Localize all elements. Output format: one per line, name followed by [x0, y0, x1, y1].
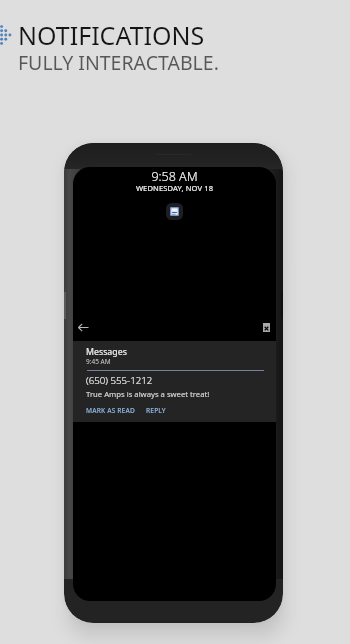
button[interactable]: Back	[74, 318, 92, 336]
button[interactable]: MARK AS READ	[86, 406, 135, 415]
button[interactable]: SIM status	[260, 321, 272, 333]
button[interactable]: Messages	[166, 203, 183, 220]
button[interactable]: REPLY	[146, 406, 166, 415]
staticText: (650) 555-1212	[86, 374, 153, 387]
staticText: WEDNESDAY, NOV 18	[73, 183, 276, 193]
staticText: 9:58 AM	[73, 168, 276, 185]
staticText: True Amps is always a sweet treat!	[86, 389, 210, 399]
staticText: REPLY	[146, 406, 166, 415]
staticText: MARK AS READ	[86, 406, 135, 415]
staticText: 9:45 AM	[86, 357, 111, 366]
staticText: NOTIFICATIONS	[18, 18, 205, 52]
staticText: Messages	[86, 346, 127, 358]
staticText: FULLY INTERACTABLE.	[18, 49, 219, 76]
button[interactable]: Messages	[73, 341, 276, 422]
